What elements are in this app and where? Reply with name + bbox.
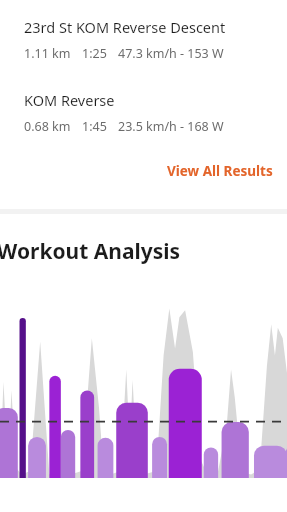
staticText: 1:25 <box>82 45 107 62</box>
staticText: 23.5 km/h - 168 W <box>118 118 224 135</box>
staticText: 1:45 <box>82 118 107 135</box>
staticText: KOM Reverse <box>24 90 115 110</box>
button[interactable]: Workout analysis power chart <box>0 290 287 478</box>
button[interactable]: KOM Reverse <box>0 62 287 135</box>
button[interactable]: View All Results <box>0 159 287 183</box>
staticText: 47.3 km/h - 153 W <box>118 45 224 62</box>
staticText: 0.68 km <box>24 118 71 135</box>
button[interactable]: 23rd St KOM Reverse Descent <box>0 0 287 62</box>
staticText: View All Results <box>167 162 273 180</box>
staticText: Workout Analysis <box>0 237 181 266</box>
staticText: 23rd St KOM Reverse Descent <box>24 17 226 37</box>
staticText: 1.11 km <box>24 45 71 62</box>
